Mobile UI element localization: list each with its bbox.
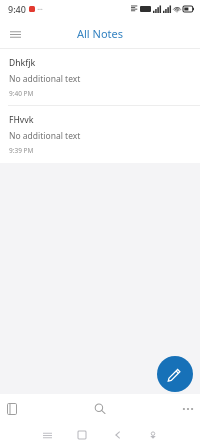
button[interactable]: Download bbox=[144, 426, 162, 444]
staticText: No additional text bbox=[9, 73, 81, 85]
staticText: Dhkfjk bbox=[9, 57, 36, 69]
staticText: All Notes bbox=[77, 26, 124, 41]
staticText: No additional text bbox=[9, 130, 81, 142]
staticText: FHvvk bbox=[9, 114, 34, 126]
staticText: 9:40 PM bbox=[9, 89, 34, 98]
button[interactable]: FHvvk bbox=[0, 106, 200, 162]
staticText: 9:39 PM bbox=[9, 146, 34, 155]
button[interactable]: Dhkfjk bbox=[0, 49, 200, 105]
button[interactable]: Recent apps bbox=[38, 426, 56, 444]
button[interactable]: New note bbox=[157, 356, 193, 392]
button[interactable]: Notes bbox=[0, 394, 66, 424]
button[interactable]: Back bbox=[109, 426, 127, 444]
button[interactable]: Search bbox=[66, 394, 133, 424]
staticText: 9:40 bbox=[8, 3, 26, 15]
button[interactable]: More options bbox=[133, 394, 200, 424]
button[interactable]: Open navigation menu bbox=[4, 23, 26, 45]
button[interactable]: Home bbox=[73, 426, 91, 444]
